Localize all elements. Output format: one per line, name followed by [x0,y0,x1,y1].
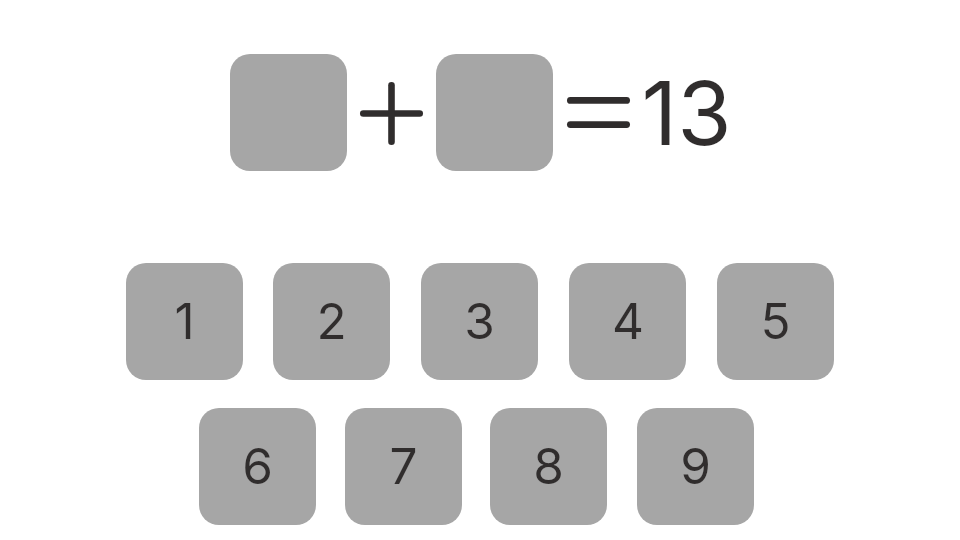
staticText: 3 [464,291,495,351]
staticText: 5 [760,291,791,351]
button[interactable]: 1 [126,263,243,380]
button[interactable]: 9 [637,408,754,525]
button[interactable]: 5 [717,263,834,380]
staticText: 9 [680,436,711,496]
button[interactable]: 7 [345,408,462,525]
button[interactable]: 2 [273,263,390,380]
staticText: 6 [242,436,273,496]
staticText: 2 [316,291,347,351]
staticText: 4 [612,291,644,351]
other: plus [360,82,423,145]
button[interactable]: 6 [199,408,316,525]
button[interactable]: 3 [421,263,538,380]
button[interactable]: 4 [569,263,686,380]
staticText: 1 [174,291,195,351]
staticText: 7 [389,436,418,496]
button[interactable]: Second addend, empty slot [436,54,553,171]
staticText: 13 [641,60,732,166]
other: equals [567,97,630,128]
button[interactable]: First addend, empty slot [230,54,347,171]
staticText: 8 [533,436,564,496]
button[interactable]: 8 [490,408,607,525]
